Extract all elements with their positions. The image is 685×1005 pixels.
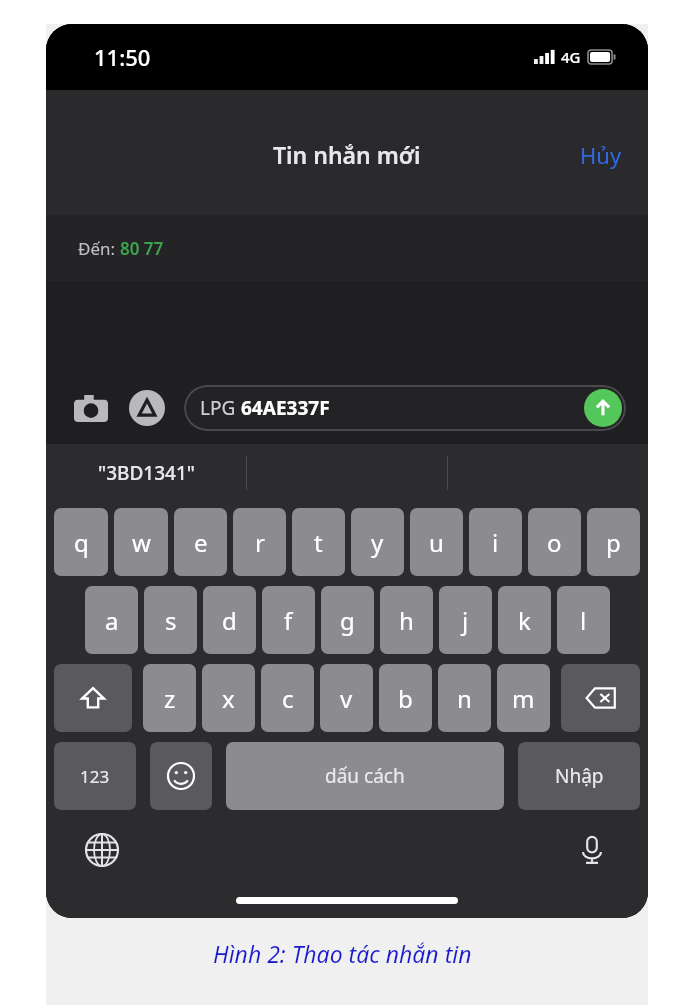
button[interactable]: Change keyboard [78,826,126,874]
button[interactable]: Dictation [568,826,616,874]
button[interactable]: t [292,508,345,576]
button[interactable]: h [380,586,433,654]
button[interactable]: l [557,586,610,654]
staticText: 64AE337F [241,395,330,421]
button[interactable]: v [320,664,373,732]
staticText: g [340,604,355,637]
staticText: a [105,604,119,637]
button[interactable]: Nhập [518,742,640,810]
staticText: o [547,526,562,559]
button[interactable]: p [587,508,640,576]
staticText: c [282,682,294,715]
staticText: l [580,604,587,637]
button[interactable]: Đến: [46,215,648,281]
button[interactable]: Emoji [150,742,212,810]
staticText: w [132,526,151,559]
staticText: d [222,604,237,637]
staticText: t [314,526,323,559]
staticText: j [462,604,469,637]
staticText: 80 77 [120,237,164,260]
button[interactable]: "3BD1341" [46,444,246,502]
staticText: Hủy [580,140,622,170]
staticText: e [194,526,208,559]
staticText: "3BD1341" [98,460,195,486]
button[interactable]: u [410,508,463,576]
staticText: dấu cách [325,763,405,789]
button[interactable]: Camera [68,385,114,431]
staticText: y [371,526,384,559]
button[interactable]: 123 [54,742,136,810]
button[interactable]: o [528,508,581,576]
staticText: Tin nhắn mới [273,139,421,170]
staticText: LPG [200,395,241,421]
staticText: q [74,526,89,559]
staticText: Nhập [555,763,604,789]
button[interactable]: x [202,664,255,732]
staticText: 4G [561,47,581,67]
staticText: Đến: [78,237,120,260]
staticText: p [606,526,621,559]
button[interactable]: Backspace [561,664,640,732]
button[interactable]: e [174,508,227,576]
staticText: n [457,682,472,715]
button[interactable]: Apps [124,385,170,431]
staticText: 123 [80,765,110,788]
staticText: Hình 2: Thao tác nhắn tin [213,938,472,969]
button[interactable]: k [498,586,551,654]
button[interactable]: f [262,586,315,654]
button[interactable]: dấu cách [226,742,504,810]
staticText: 11:50 [94,42,151,72]
button[interactable]: Hủy [554,128,648,182]
staticText: r [255,526,265,559]
staticText: f [284,604,293,637]
button[interactable]: q [54,508,108,576]
staticText: z [164,682,176,715]
button[interactable]: LPG [184,385,626,431]
staticText: x [222,682,235,715]
button[interactable]: Send [584,389,622,427]
button[interactable]: Shift [54,664,132,732]
button[interactable]: z [143,664,196,732]
button[interactable]: s [144,586,197,654]
staticText: i [492,526,499,559]
button[interactable]: w [114,508,168,576]
staticText: b [398,682,413,715]
button[interactable]: d [203,586,256,654]
button[interactable]: i [469,508,522,576]
staticText: k [518,604,531,637]
button[interactable]: n [438,664,491,732]
button[interactable]: y [351,508,404,576]
staticText: h [399,604,414,637]
button[interactable]: g [321,586,374,654]
staticText: v [340,682,353,715]
button[interactable]: a [85,586,138,654]
button[interactable]: j [439,586,492,654]
button[interactable]: m [497,664,550,732]
staticText: s [165,604,177,637]
button[interactable]: c [261,664,314,732]
staticText: u [429,526,444,559]
button[interactable]: b [379,664,432,732]
staticText: m [512,682,535,715]
button[interactable]: r [233,508,286,576]
